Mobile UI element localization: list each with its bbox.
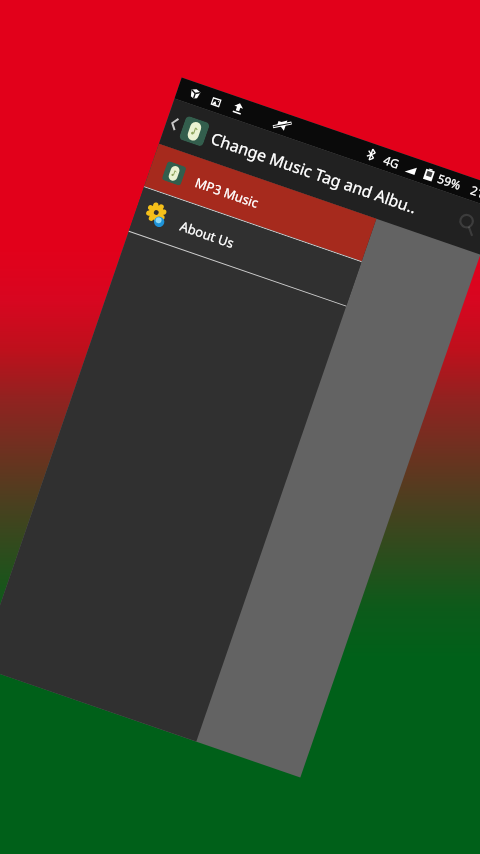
staticText: MP3 Music (193, 173, 262, 212)
button[interactable]: Navigate up (159, 98, 190, 149)
staticText: 21:1 (469, 181, 480, 204)
staticText: 4G (382, 151, 402, 172)
button[interactable]: MP3 Music (144, 144, 376, 261)
staticText: Change Music Tag and Albu.. (208, 127, 420, 219)
staticText: About Us (178, 217, 237, 252)
staticText: 59% (435, 170, 463, 193)
button[interactable]: Search (452, 209, 480, 240)
button[interactable]: About Us (129, 187, 361, 306)
